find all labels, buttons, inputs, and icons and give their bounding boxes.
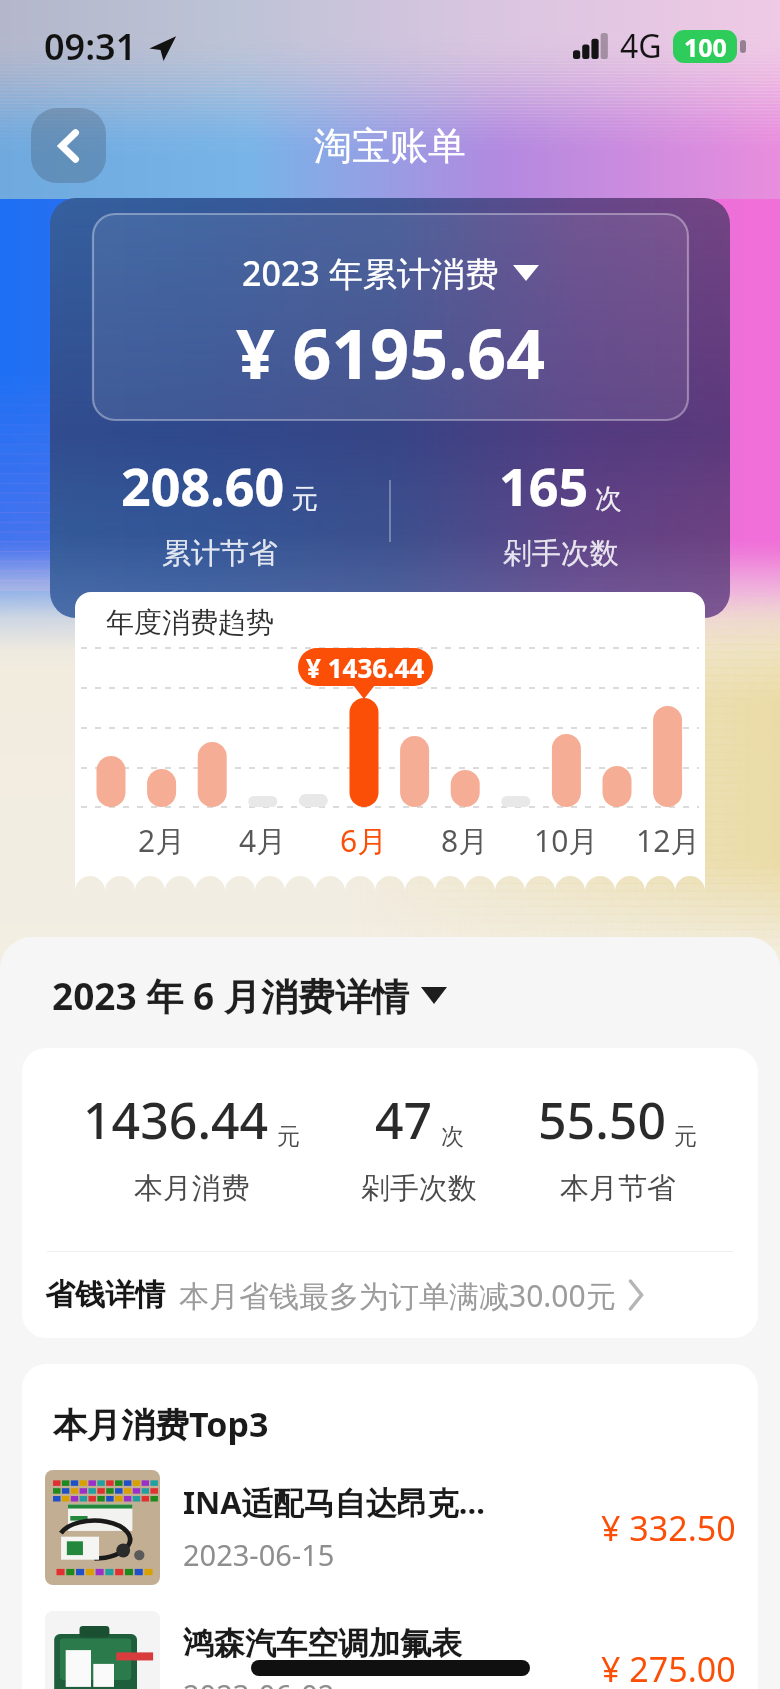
staticText: 本月节省 [560, 1170, 676, 1207]
staticText: 47 [375, 1086, 433, 1154]
staticText: 10月 [534, 820, 599, 861]
button[interactable]: 鸿森汽车空调加氟表 [45, 1611, 736, 1689]
staticText: 本月省钱最多为订单满减30.00元 [179, 1275, 616, 1316]
staticText: 6月 [340, 820, 388, 861]
staticText: 元 [291, 482, 318, 516]
staticText: ¥ 6195.64 [236, 306, 546, 399]
staticText: 12月 [636, 820, 701, 861]
staticText: 2023-06-15 [183, 1535, 335, 1574]
staticText: 55.50 [538, 1086, 666, 1154]
staticText: 本月消费 [134, 1170, 250, 1207]
staticText: ¥ 332.50 [601, 1505, 736, 1551]
staticText: 2月 [138, 820, 186, 861]
staticText: 年度消费趋势 [106, 605, 274, 640]
staticText: 2023 年 6 月消费详情 [52, 970, 409, 1021]
staticText: 100 [684, 30, 727, 63]
staticText: 剁手次数 [503, 535, 619, 572]
staticText: 165 [499, 450, 589, 521]
staticText: ¥ 1436.44 [306, 650, 425, 685]
staticText: 鸿森汽车空调加氟表 [183, 1624, 462, 1663]
staticText: 本月消费Top3 [53, 1401, 269, 1447]
staticText: 元 [674, 1122, 697, 1151]
staticText: 1436.44 [83, 1086, 269, 1154]
staticText: 元 [277, 1122, 300, 1151]
staticText: 次 [441, 1122, 464, 1151]
staticText: ¥ 275.00 [601, 1646, 736, 1689]
button[interactable]: INA适配马自达昂克... [45, 1470, 736, 1585]
staticText: 4G [620, 24, 662, 68]
staticText: 2023 年累计消费 [242, 250, 499, 296]
staticText: 208.60 [121, 450, 285, 521]
staticText: 次 [595, 482, 622, 516]
staticText: 2023-06-02 [183, 1675, 335, 1689]
button[interactable]: 2023 年 6 月消费详情 [52, 970, 780, 1021]
button[interactable]: Back [31, 108, 106, 183]
staticText: INA适配马自达昂克... [183, 1481, 485, 1523]
staticText: 淘宝账单 [314, 122, 466, 170]
staticText: 8月 [441, 820, 489, 861]
staticText: 省钱详情 [45, 1276, 165, 1314]
staticText: 剁手次数 [361, 1170, 477, 1207]
button[interactable]: 省钱详情 [45, 1252, 738, 1338]
staticText: 4月 [239, 820, 287, 861]
staticText: 09:31 [44, 22, 137, 71]
staticText: 累计节省 [162, 535, 278, 572]
